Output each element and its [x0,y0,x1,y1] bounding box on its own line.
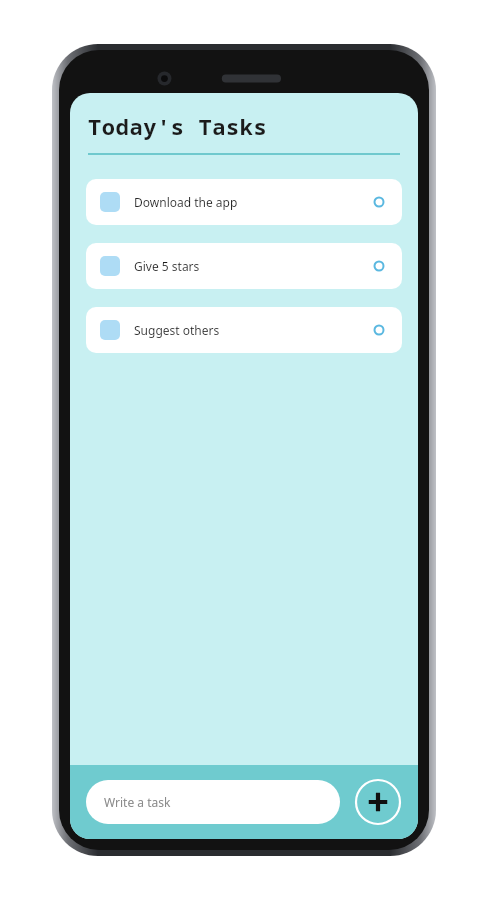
button[interactable]: Complete Suggest others [370,321,388,339]
staticText: Today's Tasks [88,111,268,141]
button[interactable]: Complete Download the app [370,193,388,211]
button[interactable]: Toggle Give 5 stars [86,243,402,289]
button[interactable]: Add task [354,778,402,826]
button[interactable]: Toggle Suggest others [86,307,402,353]
button[interactable]: Complete Give 5 stars [370,257,388,275]
button[interactable]: Toggle Download the app [100,192,120,212]
button[interactable]: Toggle Give 5 stars [100,256,120,276]
staticText: Give 5 stars [134,258,370,274]
staticText: Write a task [104,794,171,810]
button[interactable]: Toggle Download the app [86,179,402,225]
button[interactable]: Write a task [86,780,340,824]
button[interactable]: Toggle Suggest others [100,320,120,340]
staticText: Download the app [134,194,370,210]
staticText: Suggest others [134,322,370,338]
